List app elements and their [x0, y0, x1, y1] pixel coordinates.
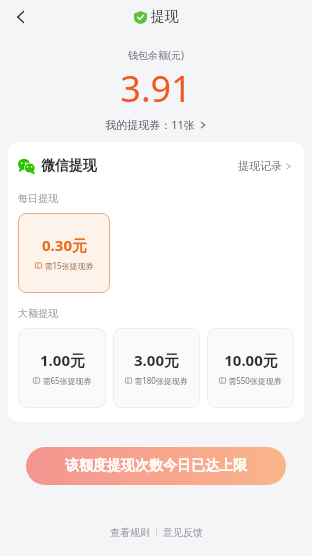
staticText: 0.30元: [42, 235, 87, 255]
staticText: 该额度提现次数今日已达上限: [65, 457, 247, 475]
staticText: 查看规则: [110, 526, 150, 539]
staticText: 大额提现: [18, 307, 58, 320]
button[interactable]: 0.30元: [18, 213, 110, 293]
button[interactable]: 意见反馈: [157, 523, 209, 542]
staticText: 提现: [151, 8, 179, 26]
staticText: 3.00元: [134, 350, 179, 370]
staticText: 3.91: [120, 64, 192, 113]
staticText: 1.00元: [40, 350, 85, 370]
staticText: 微信提现: [41, 157, 97, 175]
staticText: 钱包余额(元): [128, 48, 184, 62]
staticText: 需180张提现券: [134, 375, 188, 386]
staticText: 需65张提现券: [42, 375, 92, 386]
button[interactable]: 我的提现券：11张: [99, 115, 213, 134]
button[interactable]: 查看规则: [104, 523, 156, 542]
staticText: 意见反馈: [163, 526, 203, 539]
button[interactable]: Back: [4, 0, 38, 34]
staticText: 提现记录: [238, 159, 282, 173]
staticText: 需550张提现券: [228, 375, 282, 386]
staticText: 每日提现: [18, 192, 58, 205]
staticText: 需15张提现券: [44, 260, 94, 271]
staticText: 10.00元: [224, 350, 278, 370]
button[interactable]: 1.00元: [18, 328, 106, 408]
button[interactable]: 10.00元: [207, 328, 294, 408]
button[interactable]: 3.00元: [113, 328, 200, 408]
staticText: 我的提现券：11张: [105, 117, 195, 132]
button[interactable]: 该额度提现次数今日已达上限: [26, 447, 286, 485]
button[interactable]: 提现记录: [234, 156, 296, 176]
